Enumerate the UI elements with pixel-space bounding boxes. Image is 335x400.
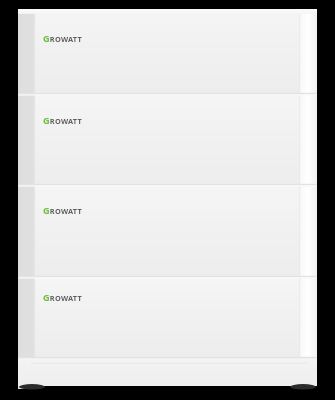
button[interactable]: Growatt battery stack <box>0 0 335 400</box>
